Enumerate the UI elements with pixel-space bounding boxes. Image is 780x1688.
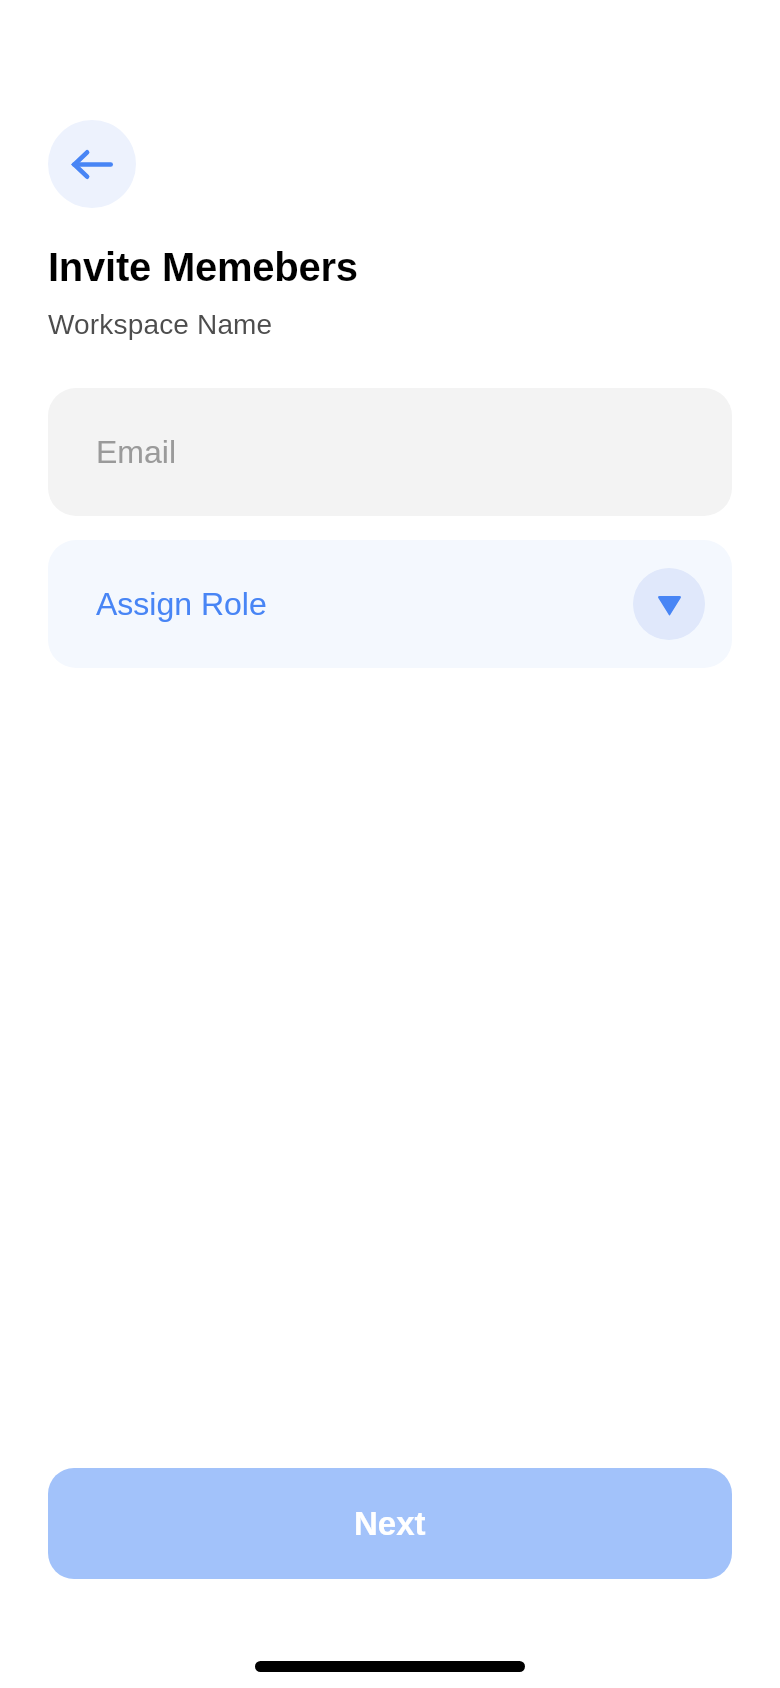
button[interactable]: Assign Role bbox=[48, 540, 732, 668]
button[interactable]: Email bbox=[48, 388, 732, 516]
staticText: Next bbox=[354, 1505, 426, 1542]
button[interactable]: Back bbox=[48, 120, 136, 208]
staticText: Workspace Name bbox=[48, 309, 273, 340]
button[interactable]: Next bbox=[48, 1468, 732, 1579]
staticText: Email bbox=[96, 434, 177, 470]
staticText: Assign Role bbox=[96, 586, 267, 622]
staticText: Invite Memebers bbox=[48, 245, 358, 290]
button[interactable]: Open role dropdown bbox=[633, 568, 705, 640]
